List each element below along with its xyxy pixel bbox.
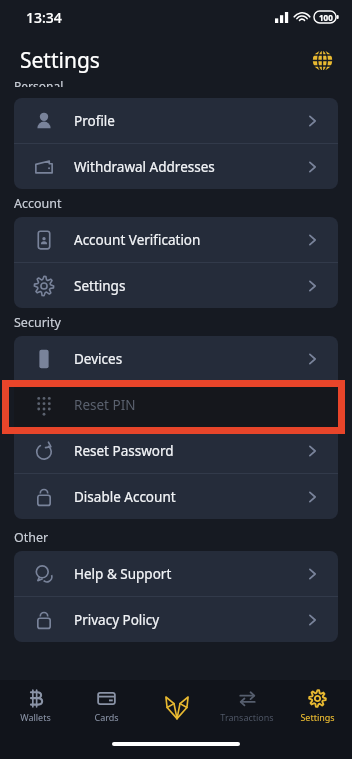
- staticText: Settings: [74, 277, 304, 295]
- staticText: Withdrawal Addresses: [74, 158, 304, 176]
- button[interactable]: Disable Account: [14, 474, 338, 519]
- button[interactable]: Transactions: [212, 680, 282, 732]
- button[interactable]: Language: [305, 43, 339, 77]
- staticText: Reset Password: [74, 442, 304, 460]
- button[interactable]: Settings: [282, 680, 352, 732]
- button[interactable]: Wallets: [0, 680, 71, 732]
- button[interactable]: Reset Password: [14, 428, 338, 473]
- staticText: Settings: [20, 46, 100, 75]
- staticText: Privacy Policy: [74, 611, 304, 629]
- staticText: Profile: [74, 112, 304, 130]
- staticText: Wallets: [20, 711, 51, 723]
- staticText: 100: [319, 12, 333, 23]
- button[interactable]: Account Verification: [14, 217, 338, 262]
- staticText: Other: [14, 529, 49, 546]
- staticText: Disable Account: [74, 488, 304, 506]
- button[interactable]: Home: [142, 680, 212, 732]
- staticText: Settings: [300, 711, 335, 723]
- button[interactable]: Settings: [14, 263, 338, 308]
- staticText: Transactions: [220, 711, 274, 723]
- button[interactable]: Cards: [71, 680, 142, 732]
- staticText: Cards: [94, 711, 119, 723]
- button[interactable]: Privacy Policy: [14, 597, 338, 642]
- staticText: Devices: [74, 350, 304, 368]
- button[interactable]: Withdrawal Addresses: [14, 144, 338, 189]
- staticText: Account: [14, 195, 62, 212]
- staticText: 13:34: [26, 8, 62, 27]
- staticText: Security: [14, 314, 61, 331]
- staticText: Personal: [14, 78, 64, 87]
- staticText: Account Verification: [74, 231, 304, 249]
- button[interactable]: Profile: [14, 98, 338, 143]
- staticText: Help & Support: [74, 565, 304, 583]
- button[interactable]: Reset PIN: [14, 382, 338, 427]
- button[interactable]: Help & Support: [14, 551, 338, 596]
- button[interactable]: Devices: [14, 336, 338, 381]
- staticText: Reset PIN: [74, 396, 304, 414]
